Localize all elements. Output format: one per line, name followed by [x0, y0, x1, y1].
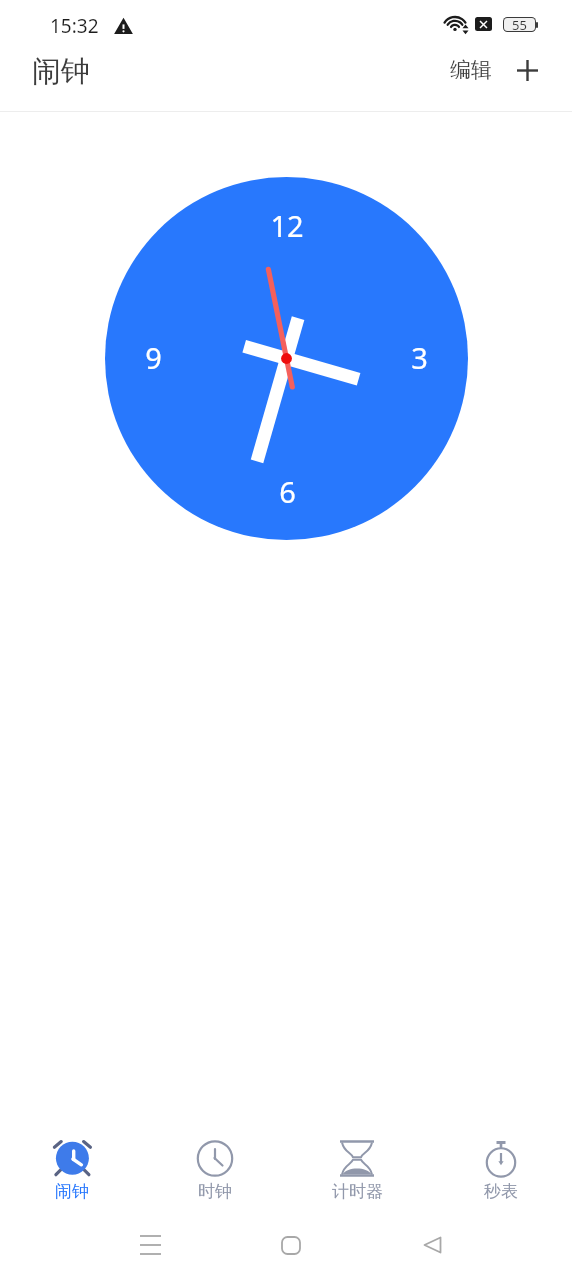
button[interactable]: 计时器	[286, 1126, 429, 1212]
button[interactable]: 秒表	[429, 1126, 572, 1212]
button[interactable]: 闹钟	[17, 40, 107, 103]
staticText: 秒表	[484, 1181, 518, 1202]
button[interactable]: Back	[408, 1221, 456, 1269]
button[interactable]: 编辑	[438, 46, 504, 94]
button[interactable]: Recents	[126, 1221, 174, 1269]
staticText: 计时器	[332, 1181, 383, 1202]
staticText: 闹钟	[32, 53, 90, 90]
staticText: 6	[279, 472, 296, 511]
staticText: 闹钟	[55, 1181, 89, 1202]
staticText: 时钟	[198, 1181, 232, 1202]
button[interactable]: 时钟	[143, 1126, 286, 1212]
button[interactable]: Add alarm	[505, 48, 550, 93]
staticText: 55	[512, 16, 527, 31]
staticText: 12	[270, 206, 304, 245]
button[interactable]: Home	[267, 1221, 315, 1269]
button[interactable]: 闹钟	[0, 1126, 143, 1212]
staticText: 编辑	[450, 57, 492, 83]
staticText: 15:32	[50, 13, 99, 39]
staticText: 9	[145, 338, 162, 377]
staticText: 3	[411, 338, 428, 377]
